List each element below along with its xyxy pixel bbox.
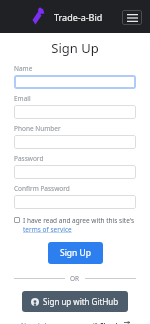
button[interactable]	[14, 165, 136, 179]
staticText: Email	[14, 94, 31, 103]
staticText: Sign Up	[14, 39, 136, 57]
button[interactable]: Menu	[122, 10, 142, 25]
staticText: OR	[70, 274, 80, 283]
staticText: Phone Number	[14, 124, 61, 133]
button[interactable]: I have read and agree with this site's	[14, 216, 136, 234]
button[interactable]	[14, 195, 136, 209]
staticText: Name	[14, 64, 33, 73]
staticText: Sign up with GitHub	[43, 296, 119, 307]
button[interactable]: terms of service	[23, 225, 72, 234]
button[interactable]: Sign up with GitHub	[22, 291, 128, 312]
staticText: Password	[14, 154, 44, 163]
staticText: Confirm Password	[14, 184, 70, 193]
button[interactable]	[14, 75, 136, 89]
staticText: Sign Up	[60, 247, 91, 259]
button[interactable]: Sign in	[100, 321, 130, 324]
button[interactable]	[14, 135, 136, 149]
staticText: Sign in	[100, 321, 122, 324]
button[interactable]	[14, 105, 136, 119]
button[interactable]: Sign Up	[48, 242, 103, 264]
other: Trade-a-Bid logo	[30, 8, 48, 26]
staticText: I have read and agree with this site's	[23, 216, 135, 225]
staticText: Trade-a-Bid	[54, 11, 103, 23]
staticText: Already have an account?	[20, 321, 100, 324]
